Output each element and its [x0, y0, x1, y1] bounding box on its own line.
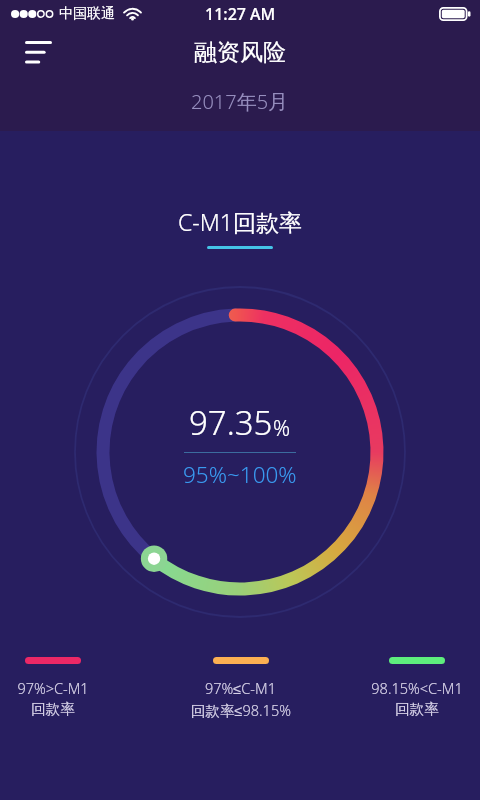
staticText: %: [273, 414, 291, 443]
staticText: 回款率≤98.15%: [191, 700, 291, 720]
staticText: 中国联通: [59, 5, 115, 23]
staticText: 11:27 AM: [205, 3, 276, 25]
button[interactable]: 98.15%<C-M1: [354, 657, 480, 718]
staticText: C-M1回款率: [178, 206, 302, 237]
button[interactable]: 97%>C-M1: [0, 657, 106, 718]
staticText: 97%>C-M1: [17, 678, 89, 698]
staticText: 98.15%<C-M1: [371, 678, 463, 698]
staticText: 95%~100%: [183, 459, 297, 490]
staticText: 2017年5月: [191, 88, 289, 115]
staticText: 回款率: [395, 700, 439, 718]
button[interactable]: Menu: [14, 28, 62, 76]
button[interactable]: 97%≤C-M1: [170, 657, 311, 720]
staticText: 97.35: [189, 400, 273, 445]
staticText: 融资风险: [194, 38, 286, 67]
staticText: 97%≤C-M1: [205, 678, 276, 698]
staticText: 回款率: [31, 700, 75, 718]
